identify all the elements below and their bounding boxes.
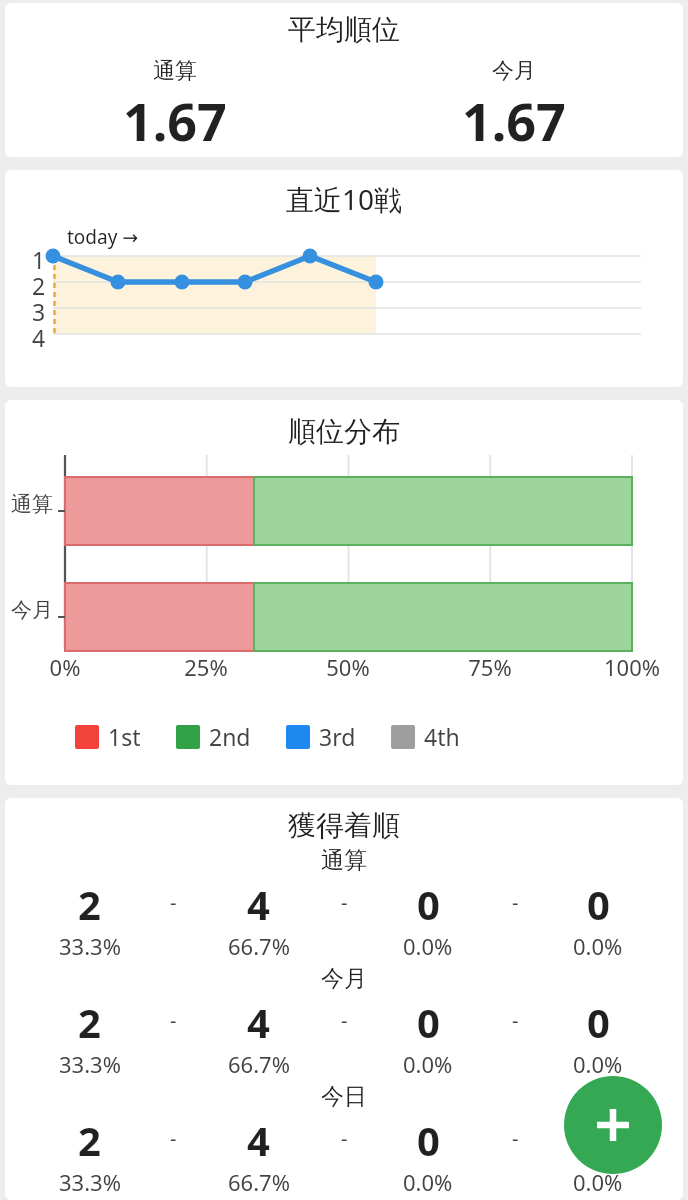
staticText: 0 xyxy=(417,877,440,931)
staticText: - xyxy=(341,1125,348,1152)
staticText: 獲得着順 xyxy=(5,808,683,843)
button[interactable]: 1st xyxy=(75,721,141,752)
staticText: 4 xyxy=(247,877,270,931)
staticText: 0.0% xyxy=(573,931,623,961)
staticText: 4th xyxy=(424,721,460,752)
staticText: 1.67 xyxy=(462,85,566,156)
staticText: 0 xyxy=(417,1113,440,1167)
staticText: 2 xyxy=(78,1113,101,1167)
staticText: 直近10戦 xyxy=(5,180,683,218)
staticText: 1 xyxy=(32,244,46,270)
staticText: 0.0% xyxy=(573,1167,623,1197)
staticText: 25% xyxy=(171,652,241,682)
staticText: - xyxy=(512,1125,519,1152)
staticText: 順位分布 xyxy=(5,414,683,449)
button[interactable]: 2nd xyxy=(176,721,251,752)
staticText: 66.7% xyxy=(228,931,290,961)
staticText: 0.0% xyxy=(403,1049,453,1079)
staticText: 0.0% xyxy=(573,1049,623,1079)
staticText: 0% xyxy=(30,652,100,682)
button[interactable]: 順位分布 xyxy=(5,400,683,785)
staticText: 今月 xyxy=(492,57,536,85)
staticText: 4 xyxy=(247,995,270,1049)
staticText: 2 xyxy=(32,270,46,296)
button[interactable]: 3rd xyxy=(286,721,356,752)
staticText: 0 xyxy=(417,995,440,1049)
staticText: - xyxy=(341,889,348,916)
staticText: 33.3% xyxy=(59,1167,121,1197)
staticText: 4 xyxy=(247,1113,270,1167)
staticText: - xyxy=(170,1007,177,1034)
staticText: 今月 xyxy=(11,597,53,623)
staticText: 66.7% xyxy=(228,1049,290,1079)
staticText: 3rd xyxy=(319,721,356,752)
staticText: 2 xyxy=(78,995,101,1049)
staticText: - xyxy=(170,889,177,916)
staticText: 今月 xyxy=(5,964,683,993)
staticText: 4 xyxy=(32,322,46,348)
staticText: 平均順位 xyxy=(5,12,683,47)
staticText: today → xyxy=(67,224,139,250)
button[interactable]: 獲得着順 xyxy=(5,798,683,1200)
staticText: 66.7% xyxy=(228,1167,290,1197)
staticText: - xyxy=(512,889,519,916)
staticText: 33.3% xyxy=(59,1049,121,1079)
staticText: 0.0% xyxy=(403,1167,453,1197)
staticText: 1st xyxy=(108,721,141,752)
staticText: 2 xyxy=(78,877,101,931)
staticText: 0 xyxy=(587,1113,610,1167)
staticText: 0.0% xyxy=(403,931,453,961)
staticText: 3 xyxy=(32,296,46,322)
staticText: - xyxy=(170,1125,177,1152)
staticText: 0 xyxy=(587,995,610,1049)
button[interactable]: 4th xyxy=(391,721,460,752)
staticText: 2nd xyxy=(209,721,251,752)
staticText: 0 xyxy=(587,877,610,931)
staticText: 通算 xyxy=(153,57,197,85)
staticText: 75% xyxy=(455,652,525,682)
staticText: 50% xyxy=(313,652,383,682)
staticText: 33.3% xyxy=(59,931,121,961)
staticText: 1.67 xyxy=(123,85,227,156)
staticText: 100% xyxy=(597,652,667,682)
staticText: 今日 xyxy=(5,1082,683,1111)
button[interactable]: 平均順位 xyxy=(5,3,683,157)
button[interactable]: Add record xyxy=(564,1076,662,1174)
staticText: - xyxy=(512,1007,519,1034)
staticText: 通算 xyxy=(11,491,53,517)
staticText: - xyxy=(341,1007,348,1034)
staticText: 通算 xyxy=(5,846,683,875)
button[interactable]: 直近10戦 xyxy=(5,170,683,387)
